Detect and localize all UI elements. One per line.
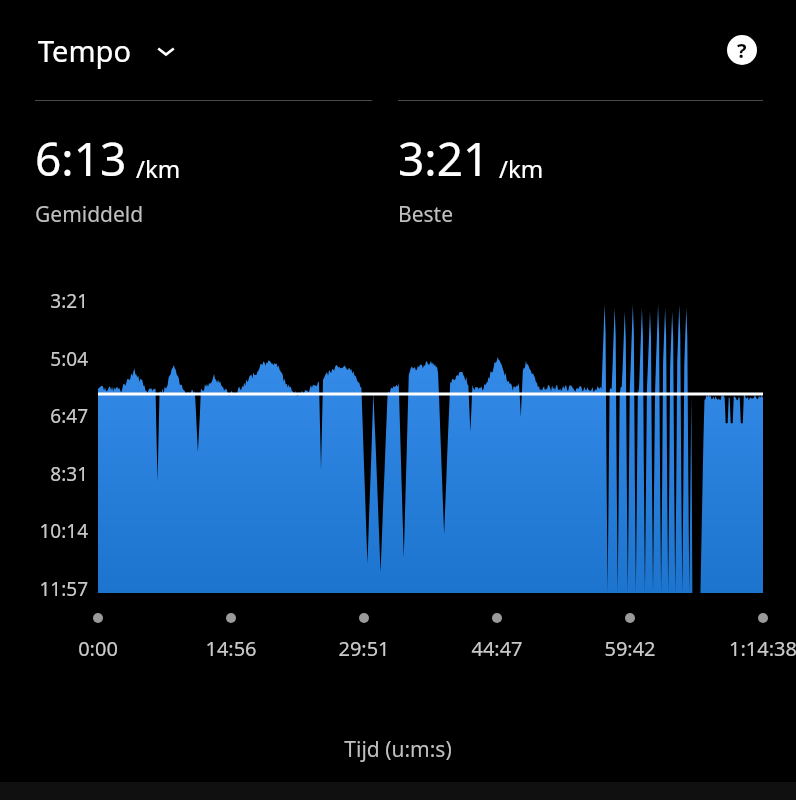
button[interactable]: Tempo xyxy=(34,25,183,76)
staticText: 11:57 xyxy=(39,576,88,602)
staticText: Tijd (u:m:s) xyxy=(0,735,796,764)
staticText: 29:51 xyxy=(338,635,390,662)
button[interactable]: Help xyxy=(726,34,758,66)
staticText: Tempo xyxy=(38,31,131,70)
staticText: 6:47 xyxy=(50,403,88,429)
staticText: 44:47 xyxy=(471,635,523,662)
staticText: 1:14:38 xyxy=(729,635,796,662)
staticText: Beste xyxy=(398,200,453,229)
staticText: 0:00 xyxy=(78,635,118,662)
staticText: Gemiddeld xyxy=(35,200,144,229)
staticText: 8:31 xyxy=(50,461,88,487)
staticText: 14:56 xyxy=(205,635,257,662)
staticText: /km xyxy=(136,152,181,185)
staticText: 10:14 xyxy=(39,518,88,544)
staticText: 5:04 xyxy=(50,346,88,372)
staticText: /km xyxy=(499,152,544,185)
staticText: 59:42 xyxy=(604,635,656,662)
staticText: 6:13 xyxy=(35,127,127,190)
staticText: ? xyxy=(737,37,747,64)
staticText: 3:21 xyxy=(50,288,88,314)
staticText: 3:21 xyxy=(398,127,490,190)
